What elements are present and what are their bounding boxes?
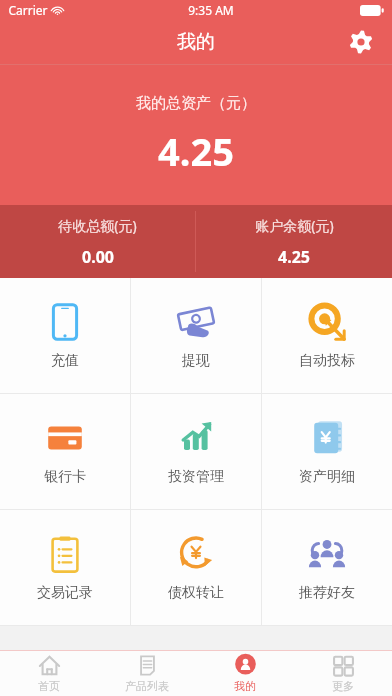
button[interactable]: 更多 <box>294 651 392 696</box>
button[interactable]: 自动投标 <box>262 278 392 393</box>
button[interactable]: 充值 <box>0 278 130 393</box>
staticText: 账户余额(元) <box>255 216 334 235</box>
staticText: 交易记录 <box>37 584 93 602</box>
staticText: 债权转让 <box>168 584 224 602</box>
staticText: 待收总额(元) <box>58 216 137 235</box>
button[interactable]: 账户余额(元) <box>196 205 392 278</box>
button[interactable]: 我的 <box>196 651 294 696</box>
button[interactable]: 待收总额(元) <box>0 205 195 278</box>
button[interactable]: 产品列表 <box>98 651 196 696</box>
staticText: 9:35 AM <box>188 2 234 18</box>
staticText: 4.25 <box>278 246 310 268</box>
staticText: 我的 <box>177 30 215 54</box>
button[interactable]: 债权转让 <box>131 510 261 625</box>
staticText: 首页 <box>38 679 60 693</box>
staticText: Carrier <box>8 2 48 18</box>
staticText: 更多 <box>332 679 354 693</box>
button[interactable]: 银行卡 <box>0 394 130 509</box>
staticText: 我的总资产（元） <box>136 94 256 113</box>
staticText: 4.25 <box>158 125 234 177</box>
staticText: 充值 <box>51 352 79 370</box>
staticText: 0.00 <box>82 246 114 268</box>
staticText: 提现 <box>182 352 210 370</box>
staticText: 推荐好友 <box>299 584 355 602</box>
button[interactable]: 提现 <box>131 278 261 393</box>
staticText: 我的 <box>234 679 256 693</box>
staticText: 自动投标 <box>299 352 355 370</box>
staticText: 产品列表 <box>125 679 169 693</box>
button[interactable]: 首页 <box>0 651 98 696</box>
staticText: 资产明细 <box>299 468 355 486</box>
staticText: 投资管理 <box>168 468 224 486</box>
staticText: 银行卡 <box>44 468 86 486</box>
button[interactable]: Settings <box>346 27 376 57</box>
button[interactable]: 资产明细 <box>262 394 392 509</box>
button[interactable]: 交易记录 <box>0 510 130 625</box>
button[interactable]: 投资管理 <box>131 394 261 509</box>
button[interactable]: 推荐好友 <box>262 510 392 625</box>
